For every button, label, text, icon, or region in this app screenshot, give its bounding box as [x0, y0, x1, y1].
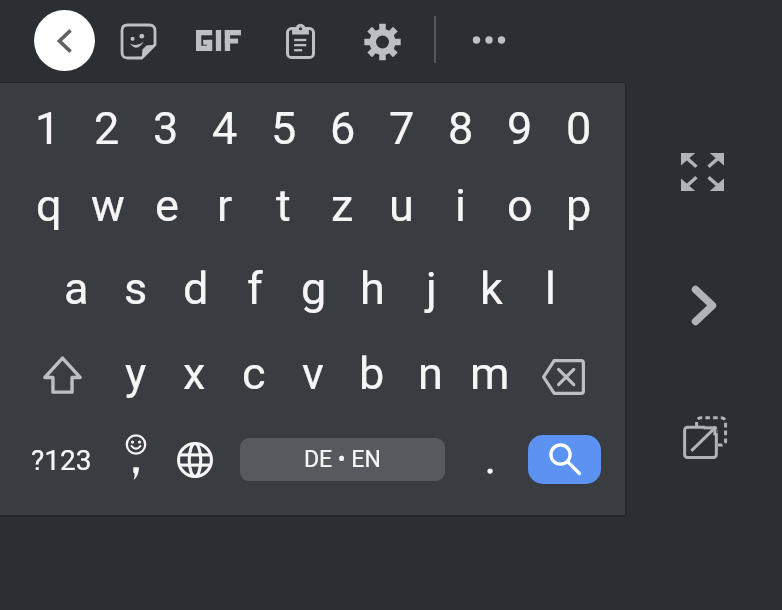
- button[interactable]: z: [313, 163, 372, 247]
- staticText: 5: [271, 102, 297, 155]
- staticText: e: [155, 179, 179, 232]
- button[interactable]: i: [431, 163, 490, 247]
- button[interactable]: a: [47, 246, 106, 330]
- button[interactable]: f: [225, 246, 284, 330]
- button[interactable]: k: [462, 246, 521, 330]
- button[interactable]: Search: [528, 435, 601, 484]
- staticText: x: [183, 347, 206, 400]
- staticText: 3: [153, 102, 179, 155]
- staticText: v: [302, 347, 324, 400]
- button[interactable]: u: [372, 163, 431, 247]
- staticText: 1: [35, 102, 61, 155]
- button[interactable]: s: [106, 246, 165, 330]
- staticText: 2: [94, 102, 120, 155]
- button[interactable]: Backspace: [528, 335, 598, 419]
- button[interactable]: w: [78, 163, 137, 247]
- button[interactable]: h: [343, 246, 402, 330]
- staticText: y: [125, 347, 147, 400]
- staticText: w: [91, 179, 125, 232]
- button[interactable]: 2: [77, 86, 136, 170]
- staticText: r: [217, 179, 233, 232]
- button[interactable]: d: [166, 246, 225, 330]
- button[interactable]: e: [137, 163, 196, 247]
- button[interactable]: More options: [463, 14, 515, 66]
- button[interactable]: 5: [254, 86, 313, 170]
- staticText: m: [470, 347, 510, 400]
- staticText: z: [331, 179, 354, 232]
- button[interactable]: 3: [136, 86, 195, 170]
- staticText: p: [566, 179, 592, 232]
- button[interactable]: DE • EN: [240, 438, 445, 481]
- button[interactable]: 9: [490, 86, 549, 170]
- button[interactable]: Change language: [166, 418, 224, 502]
- button[interactable]: 4: [195, 86, 254, 170]
- staticText: 6: [330, 102, 356, 155]
- button[interactable]: Pop out: [679, 411, 731, 463]
- staticText: c: [242, 347, 266, 400]
- button[interactable]: l: [521, 246, 580, 330]
- button[interactable]: c: [224, 331, 283, 415]
- button[interactable]: 0: [549, 86, 608, 170]
- staticText: a: [64, 262, 89, 315]
- button[interactable]: b: [342, 331, 401, 415]
- button[interactable]: j: [402, 246, 461, 330]
- button[interactable]: y: [106, 331, 165, 415]
- staticText: q: [36, 179, 62, 232]
- staticText: 9: [507, 102, 533, 155]
- button[interactable]: q: [19, 163, 78, 247]
- staticText: b: [359, 347, 385, 400]
- button[interactable]: v: [283, 331, 342, 415]
- staticText: k: [480, 262, 503, 315]
- button[interactable]: Expand: [676, 146, 728, 198]
- button[interactable]: t: [254, 163, 313, 247]
- button[interactable]: 8: [431, 86, 490, 170]
- staticText: d: [183, 262, 209, 315]
- staticText: h: [360, 262, 385, 315]
- staticText: i: [455, 179, 466, 232]
- button[interactable]: o: [490, 163, 549, 247]
- button[interactable]: g: [284, 246, 343, 330]
- button[interactable]: x: [165, 331, 224, 415]
- staticText: f: [247, 262, 263, 315]
- staticText: u: [389, 179, 414, 232]
- staticText: l: [545, 262, 556, 315]
- button[interactable]: 7: [372, 86, 431, 170]
- staticText: n: [418, 347, 443, 400]
- staticText: g: [301, 262, 327, 315]
- staticText: s: [124, 262, 148, 315]
- button[interactable]: Emoji: [107, 418, 165, 502]
- button[interactable]: [460, 418, 518, 502]
- button[interactable]: Shift: [27, 333, 97, 417]
- staticText: 0: [566, 102, 592, 155]
- button[interactable]: Next: [678, 279, 730, 331]
- staticText: 4: [212, 102, 238, 155]
- button[interactable]: r: [195, 163, 254, 247]
- staticText: 7: [389, 102, 415, 155]
- button[interactable]: Settings: [356, 16, 408, 68]
- staticText: 8: [448, 102, 474, 155]
- button[interactable]: Clipboard: [274, 17, 326, 69]
- button[interactable]: GIF: [188, 14, 248, 66]
- staticText: DE • EN: [304, 446, 381, 473]
- button[interactable]: m: [460, 331, 519, 415]
- button[interactable]: 6: [313, 86, 372, 170]
- staticText: ?123: [31, 444, 92, 477]
- button[interactable]: n: [401, 331, 460, 415]
- staticText: o: [507, 179, 533, 232]
- button[interactable]: p: [549, 163, 608, 247]
- button[interactable]: 1: [18, 86, 77, 170]
- button[interactable]: Stickers: [112, 15, 164, 67]
- button[interactable]: Back: [34, 10, 95, 71]
- staticText: t: [276, 179, 291, 232]
- button[interactable]: ?123: [25, 418, 97, 502]
- staticText: j: [426, 262, 437, 315]
